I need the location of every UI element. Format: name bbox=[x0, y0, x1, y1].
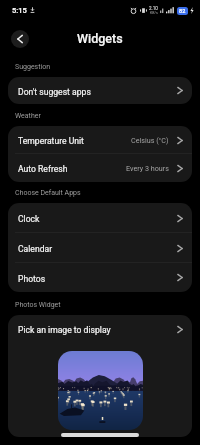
button[interactable]: Auto Refresh bbox=[8, 154, 192, 182]
button[interactable]: Back bbox=[11, 30, 29, 48]
staticText: 82 bbox=[179, 8, 186, 14]
staticText: Photos Widget bbox=[15, 301, 61, 309]
staticText: Auto Refresh bbox=[18, 164, 68, 174]
button[interactable]: Clock bbox=[8, 203, 192, 233]
button[interactable]: Pick an image to display bbox=[8, 315, 192, 343]
button[interactable]: Temperature Unit bbox=[8, 126, 192, 154]
staticText: Celsius (°C) bbox=[131, 136, 169, 144]
staticText: KB/s bbox=[150, 11, 158, 15]
staticText: 2.10 bbox=[149, 6, 158, 11]
staticText: 5:15 bbox=[12, 6, 27, 15]
button[interactable]: Calendar bbox=[8, 233, 192, 263]
button[interactable]: Don't suggest apps bbox=[8, 77, 192, 104]
staticText: Don't suggest apps bbox=[18, 87, 91, 97]
staticText: Widgets bbox=[77, 31, 123, 46]
staticText: Calendar bbox=[18, 244, 53, 254]
staticText: Weather bbox=[15, 112, 41, 120]
staticText: Choose Default Apps bbox=[15, 189, 81, 197]
staticText: Pick an image to display bbox=[18, 325, 111, 335]
staticText: Temperature Unit bbox=[18, 136, 84, 146]
staticText: Every 3 hours bbox=[126, 164, 169, 172]
staticText: Photos bbox=[18, 274, 46, 284]
staticText: Suggestion bbox=[15, 63, 51, 71]
staticText: Clock bbox=[18, 214, 40, 224]
button[interactable]: Photos bbox=[8, 263, 192, 292]
